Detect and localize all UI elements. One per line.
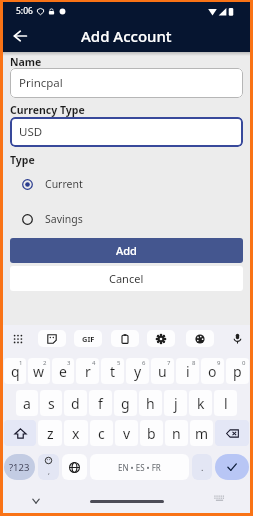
button[interactable]: u <box>151 358 174 384</box>
staticText: 0 <box>242 359 246 367</box>
staticText: Add <box>116 243 137 258</box>
staticText: 5 <box>117 359 121 367</box>
button[interactable]: Shift <box>4 420 36 446</box>
button[interactable]: Add <box>10 238 243 263</box>
staticText: a <box>23 394 31 413</box>
staticText: . <box>201 461 204 473</box>
staticText: z <box>47 424 54 443</box>
staticText: c <box>98 424 105 443</box>
button[interactable]: v <box>115 420 138 446</box>
staticText: Savings <box>45 212 83 226</box>
button[interactable]: Princpal <box>10 68 243 98</box>
button[interactable]: r <box>76 358 99 384</box>
staticText: EN • ES • FR <box>118 462 161 473</box>
staticText: Current <box>45 177 83 191</box>
staticText: s <box>48 394 55 413</box>
button[interactable]: n <box>165 420 188 446</box>
button[interactable]: . <box>192 454 212 480</box>
button[interactable]: Apps <box>6 330 30 347</box>
button[interactable]: Settings <box>147 330 175 347</box>
button[interactable]: w <box>28 358 50 384</box>
button[interactable]: q <box>4 358 26 384</box>
staticText: e <box>59 362 67 381</box>
staticText: b <box>147 424 156 443</box>
staticText: h <box>146 394 155 413</box>
staticText: d <box>71 394 80 413</box>
button[interactable]: Hide keyboard <box>28 493 44 509</box>
staticText: j <box>174 394 178 413</box>
button[interactable]: y <box>126 358 149 384</box>
staticText: Cancel <box>109 271 144 286</box>
button[interactable]: ?123 <box>4 454 35 480</box>
button[interactable]: Back <box>7 23 33 49</box>
staticText: ?123 <box>9 461 30 474</box>
button[interactable]: Voice input <box>225 330 249 347</box>
button[interactable]: z <box>38 420 62 446</box>
staticText: Name <box>10 55 42 69</box>
button[interactable]: h <box>139 390 162 416</box>
staticText: 6 <box>142 359 146 367</box>
staticText: p <box>233 362 242 381</box>
button[interactable]: Clipboard <box>111 330 139 347</box>
button[interactable]: e <box>52 358 74 384</box>
staticText: x <box>72 424 80 443</box>
staticText: Add Account <box>81 26 172 46</box>
button[interactable]: Change language <box>62 454 87 480</box>
staticText: r <box>85 362 91 381</box>
button[interactable]: p <box>226 358 249 384</box>
staticText: GIF <box>82 334 95 344</box>
staticText: w <box>33 362 45 381</box>
staticText: f <box>98 394 103 413</box>
button[interactable]: a <box>16 390 38 416</box>
button[interactable]: Cancel <box>10 266 243 291</box>
button[interactable]: s <box>40 390 62 416</box>
button[interactable]: c <box>90 420 113 446</box>
staticText: y <box>134 362 142 381</box>
button[interactable]: m <box>190 420 213 446</box>
button[interactable]: Backspace <box>215 420 249 446</box>
staticText: 2 <box>43 359 47 367</box>
staticText: Type <box>10 153 35 167</box>
button[interactable]: Savings <box>10 208 243 230</box>
staticText: , <box>48 467 50 477</box>
staticText: v <box>123 424 131 443</box>
button[interactable]: d <box>64 390 87 416</box>
staticText: 5:06 <box>16 5 33 17</box>
staticText: g <box>121 394 130 413</box>
staticText: Princpal <box>19 75 63 91</box>
button[interactable]: GIF <box>74 330 102 347</box>
staticText: u <box>158 362 167 381</box>
button[interactable]: x <box>64 420 88 446</box>
staticText: k <box>197 394 205 413</box>
staticText: 7 <box>167 359 171 367</box>
button[interactable]: j <box>164 390 187 416</box>
button[interactable]: Switch keyboard <box>211 490 227 506</box>
button[interactable]: i <box>176 358 199 384</box>
button[interactable]: t <box>101 358 124 384</box>
button[interactable]: EN • ES • FR <box>90 454 189 480</box>
staticText: USD <box>19 124 43 140</box>
button[interactable]: g <box>114 390 137 416</box>
button[interactable]: Theme <box>186 330 214 347</box>
staticText: t <box>110 362 116 381</box>
button[interactable]: Enter <box>215 454 249 480</box>
button[interactable]: Current <box>10 173 243 195</box>
button[interactable]: Stickers <box>38 330 66 347</box>
button[interactable]: k <box>189 390 212 416</box>
button[interactable]: Home <box>90 500 164 503</box>
button[interactable]: USD <box>10 117 243 147</box>
staticText: 3 <box>67 359 71 367</box>
staticText: 9 <box>217 359 221 367</box>
staticText: m <box>195 424 209 443</box>
staticText: 1 <box>19 359 23 367</box>
staticText: Currency Type <box>10 103 85 117</box>
staticText: l <box>224 394 228 413</box>
staticText: 8 <box>192 359 196 367</box>
button[interactable]: l <box>214 390 237 416</box>
button[interactable]: b <box>140 420 163 446</box>
staticText: 4 <box>92 359 96 367</box>
button[interactable]: o <box>201 358 224 384</box>
button[interactable]: Emoji <box>38 454 59 480</box>
staticText: o <box>208 362 217 381</box>
button[interactable]: f <box>89 390 112 416</box>
